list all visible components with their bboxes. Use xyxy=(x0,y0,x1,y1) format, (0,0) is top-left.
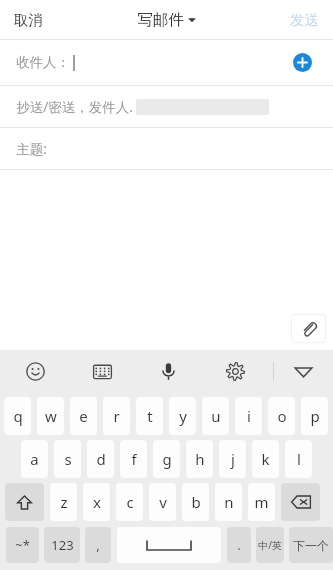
button[interactable]: o xyxy=(268,397,295,435)
button[interactable]: e xyxy=(70,397,97,435)
staticText: 123 xyxy=(51,536,74,554)
staticText: s xyxy=(64,449,72,469)
staticText: q xyxy=(13,406,23,426)
button[interactable]: 取消 xyxy=(0,2,57,38)
staticText: n xyxy=(224,492,234,512)
staticText: 发送 xyxy=(290,11,319,29)
staticText: l xyxy=(297,449,301,469)
button[interactable]: j xyxy=(219,440,246,478)
staticText: i xyxy=(247,406,251,426)
button[interactable]: , xyxy=(85,527,111,563)
button[interactable]: i xyxy=(235,397,262,435)
button[interactable]: x xyxy=(83,483,110,521)
button[interactable]: Shift xyxy=(5,483,44,521)
staticText: m xyxy=(254,492,269,512)
button[interactable]: 收件人： xyxy=(0,40,333,85)
staticText: o xyxy=(277,406,287,426)
staticText: 中/英 xyxy=(258,538,282,552)
staticText: . xyxy=(237,536,241,554)
button[interactable]: Add recipient xyxy=(293,53,312,72)
button[interactable]: k xyxy=(252,440,279,478)
staticText: r xyxy=(113,406,120,426)
button[interactable]: a xyxy=(21,440,48,478)
button[interactable]: g xyxy=(153,440,180,478)
button[interactable]: v xyxy=(149,483,176,521)
button[interactable]: f xyxy=(120,440,147,478)
button[interactable]: Emoji xyxy=(18,354,52,388)
button[interactable]: . xyxy=(227,527,251,563)
button[interactable]: 主题: xyxy=(0,128,333,169)
staticText: f xyxy=(131,449,137,469)
staticText: t xyxy=(147,406,153,426)
button[interactable]: Hide keyboard xyxy=(286,354,320,388)
staticText: u xyxy=(211,406,221,426)
button[interactable]: Space xyxy=(117,527,221,563)
staticText: 主题: xyxy=(16,140,47,158)
button[interactable]: Backspace xyxy=(281,483,320,521)
staticText: c xyxy=(126,492,134,512)
button[interactable]: 发送 xyxy=(276,2,333,38)
staticText: p xyxy=(310,406,320,426)
button[interactable]: Attach file xyxy=(291,314,326,343)
staticText: 写邮件 xyxy=(137,10,184,30)
staticText: d xyxy=(96,449,106,469)
button[interactable]: y xyxy=(169,397,196,435)
staticText: k xyxy=(261,449,270,469)
staticText: 取消 xyxy=(14,11,43,29)
button[interactable]: Voice input xyxy=(151,354,185,388)
staticText: , xyxy=(96,536,100,554)
button[interactable]: n xyxy=(215,483,242,521)
staticText: w xyxy=(45,406,57,426)
staticText: a xyxy=(30,449,39,469)
staticText: h xyxy=(195,449,205,469)
staticText: z xyxy=(60,492,68,512)
staticText: 下一个 xyxy=(293,538,329,553)
staticText: ~* xyxy=(15,536,30,554)
button[interactable]: p xyxy=(301,397,328,435)
staticText: e xyxy=(79,406,88,426)
button[interactable]: m xyxy=(248,483,275,521)
button[interactable]: 抄送/密送，发件人. xyxy=(0,86,333,127)
staticText: 收件人： xyxy=(16,54,70,71)
staticText: j xyxy=(231,449,235,469)
button[interactable]: s xyxy=(54,440,81,478)
staticText: 抄送/密送，发件人. xyxy=(16,98,133,116)
button[interactable]: d xyxy=(87,440,114,478)
staticText: y xyxy=(179,406,187,426)
staticText: g xyxy=(162,449,172,469)
button[interactable]: u xyxy=(202,397,229,435)
staticText: v xyxy=(159,492,167,512)
button[interactable]: Keyboard layout xyxy=(85,354,119,388)
button[interactable]: ~* xyxy=(6,527,39,563)
button[interactable]: w xyxy=(37,397,64,435)
button[interactable]: b xyxy=(182,483,209,521)
button[interactable]: 123 xyxy=(44,527,80,563)
button[interactable]: q xyxy=(4,397,31,435)
staticText: b xyxy=(191,492,201,512)
button[interactable]: r xyxy=(103,397,130,435)
button[interactable]: 中/英 xyxy=(256,527,284,563)
button[interactable]: 写邮件 xyxy=(131,4,202,36)
button[interactable]: Input settings xyxy=(218,354,252,388)
button[interactable]: l xyxy=(285,440,312,478)
button[interactable]: h xyxy=(186,440,213,478)
button[interactable]: 下一个 xyxy=(289,527,333,563)
button[interactable]: c xyxy=(116,483,143,521)
button[interactable]: t xyxy=(136,397,163,435)
button[interactable]: z xyxy=(50,483,77,521)
staticText: x xyxy=(93,492,101,512)
